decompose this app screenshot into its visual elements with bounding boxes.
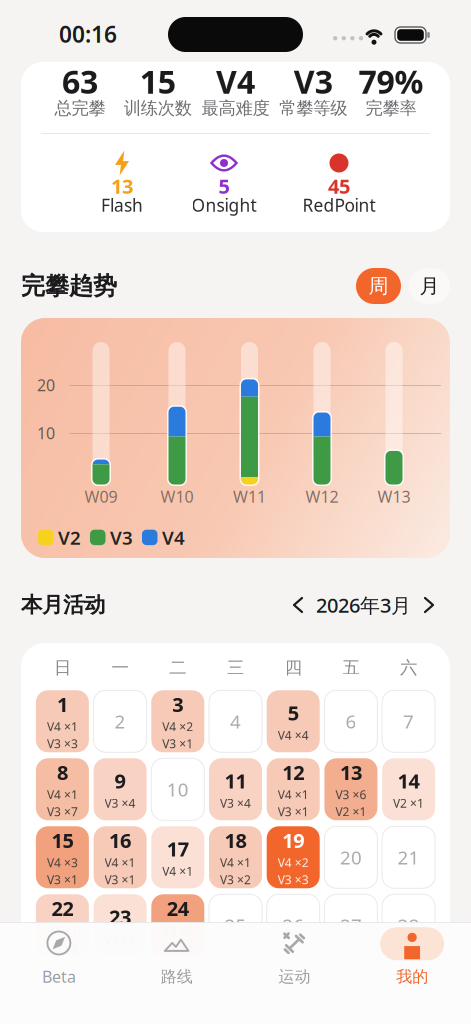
- staticText: V3 ×2: [47, 940, 78, 955]
- staticText: 23: [109, 903, 131, 930]
- staticText: V2 ×1: [393, 795, 424, 811]
- staticText: 20: [37, 374, 55, 396]
- staticText: V4 ×1: [278, 787, 309, 802]
- staticText: V4 ×1: [105, 855, 136, 870]
- staticText: 周: [368, 274, 388, 298]
- staticText: 27: [340, 913, 362, 938]
- staticText: W13: [377, 486, 410, 507]
- staticText: 24: [167, 895, 189, 922]
- button[interactable]: Previous month: [289, 598, 307, 612]
- staticText: 10: [37, 422, 55, 444]
- staticText: 13: [111, 173, 133, 199]
- button[interactable]: 21: [382, 826, 435, 888]
- staticText: V2 ×2: [162, 940, 193, 955]
- staticText: 5: [218, 173, 229, 199]
- button[interactable]: Beta: [0, 928, 118, 987]
- button[interactable]: 1: [36, 690, 89, 752]
- button[interactable]: 24: [151, 894, 204, 956]
- button[interactable]: 17: [151, 826, 204, 888]
- button[interactable]: 15: [36, 826, 89, 888]
- staticText: V4 ×2: [278, 855, 309, 870]
- staticText: 二: [169, 657, 186, 678]
- staticText: 79%: [359, 60, 424, 102]
- staticText: V4 ×3: [47, 855, 78, 870]
- button[interactable]: 23: [94, 894, 147, 956]
- staticText: V4 ×1: [220, 855, 251, 870]
- button[interactable]: 周: [356, 268, 401, 304]
- button[interactable]: 9: [94, 758, 147, 820]
- staticText: V4 ×1: [47, 719, 78, 734]
- staticText: V4: [162, 525, 185, 550]
- button[interactable]: 10: [151, 758, 204, 820]
- staticText: 最高难度: [201, 97, 269, 119]
- staticText: 45: [328, 173, 350, 199]
- staticText: 日: [54, 657, 71, 678]
- button[interactable]: 26: [267, 894, 320, 956]
- staticText: 月: [419, 274, 439, 298]
- staticText: V2: [58, 525, 81, 550]
- staticText: 63: [62, 60, 98, 102]
- staticText: V4: [216, 60, 255, 102]
- button[interactable]: 7: [382, 690, 435, 752]
- staticText: 19: [282, 827, 304, 854]
- button[interactable]: 我的: [353, 929, 471, 986]
- staticText: 1: [57, 691, 68, 718]
- staticText: 22: [51, 895, 73, 922]
- button[interactable]: 2: [94, 690, 147, 752]
- button[interactable]: 3: [151, 690, 204, 752]
- staticText: 我的: [396, 967, 428, 986]
- staticText: 三: [227, 657, 244, 678]
- staticText: 2: [115, 709, 126, 734]
- staticText: 15: [51, 827, 73, 854]
- button[interactable]: 14: [382, 758, 435, 820]
- staticText: 16: [109, 827, 131, 854]
- staticText: 12: [282, 759, 304, 786]
- staticText: 9: [115, 767, 126, 794]
- staticText: 一: [112, 657, 129, 678]
- button[interactable]: 4: [209, 690, 262, 752]
- button[interactable]: 路线: [118, 929, 236, 986]
- staticText: W09: [84, 486, 117, 507]
- button[interactable]: 运动: [235, 929, 353, 986]
- staticText: Beta: [42, 966, 76, 987]
- button[interactable]: 27: [324, 894, 377, 956]
- staticText: 完攀率: [366, 97, 417, 119]
- staticText: 14: [398, 767, 420, 794]
- staticText: RedPoint: [302, 193, 375, 216]
- staticText: V4 ×2: [162, 719, 193, 734]
- staticText: V4 ×1: [47, 787, 78, 802]
- button[interactable]: Next month: [420, 598, 438, 612]
- staticText: V3 ×1: [278, 804, 309, 819]
- staticText: 5: [288, 699, 299, 726]
- button[interactable]: 19: [267, 826, 320, 888]
- button[interactable]: 12: [267, 758, 320, 820]
- staticText: V3 ×3: [47, 736, 78, 751]
- button[interactable]: 22: [36, 894, 89, 956]
- staticText: 3: [172, 691, 183, 718]
- button[interactable]: 8: [36, 758, 89, 820]
- button[interactable]: 28: [382, 894, 435, 956]
- button[interactable]: 11: [209, 758, 262, 820]
- staticText: V4 ×1: [47, 923, 78, 938]
- staticText: V2 ×1: [335, 804, 366, 819]
- button[interactable]: 5: [267, 690, 320, 752]
- button[interactable]: 月: [409, 268, 450, 304]
- button[interactable]: 16: [94, 826, 147, 888]
- staticText: V3 ×4: [105, 795, 136, 811]
- staticText: 2026年3月: [316, 592, 411, 618]
- button[interactable]: 18: [209, 826, 262, 888]
- button[interactable]: 25: [209, 894, 262, 956]
- staticText: 00:16: [59, 19, 117, 49]
- button[interactable]: 6: [324, 690, 377, 752]
- staticText: V3 ×1: [162, 736, 193, 751]
- staticText: 六: [400, 657, 417, 678]
- staticText: 五: [342, 657, 359, 678]
- button[interactable]: 20: [324, 826, 377, 888]
- button[interactable]: 13: [324, 758, 377, 820]
- staticText: V3 ×6: [335, 787, 366, 802]
- staticText: V3 ×7: [47, 804, 78, 819]
- staticText: W12: [305, 486, 338, 507]
- staticText: 21: [398, 845, 420, 870]
- staticText: 总完攀: [54, 97, 105, 119]
